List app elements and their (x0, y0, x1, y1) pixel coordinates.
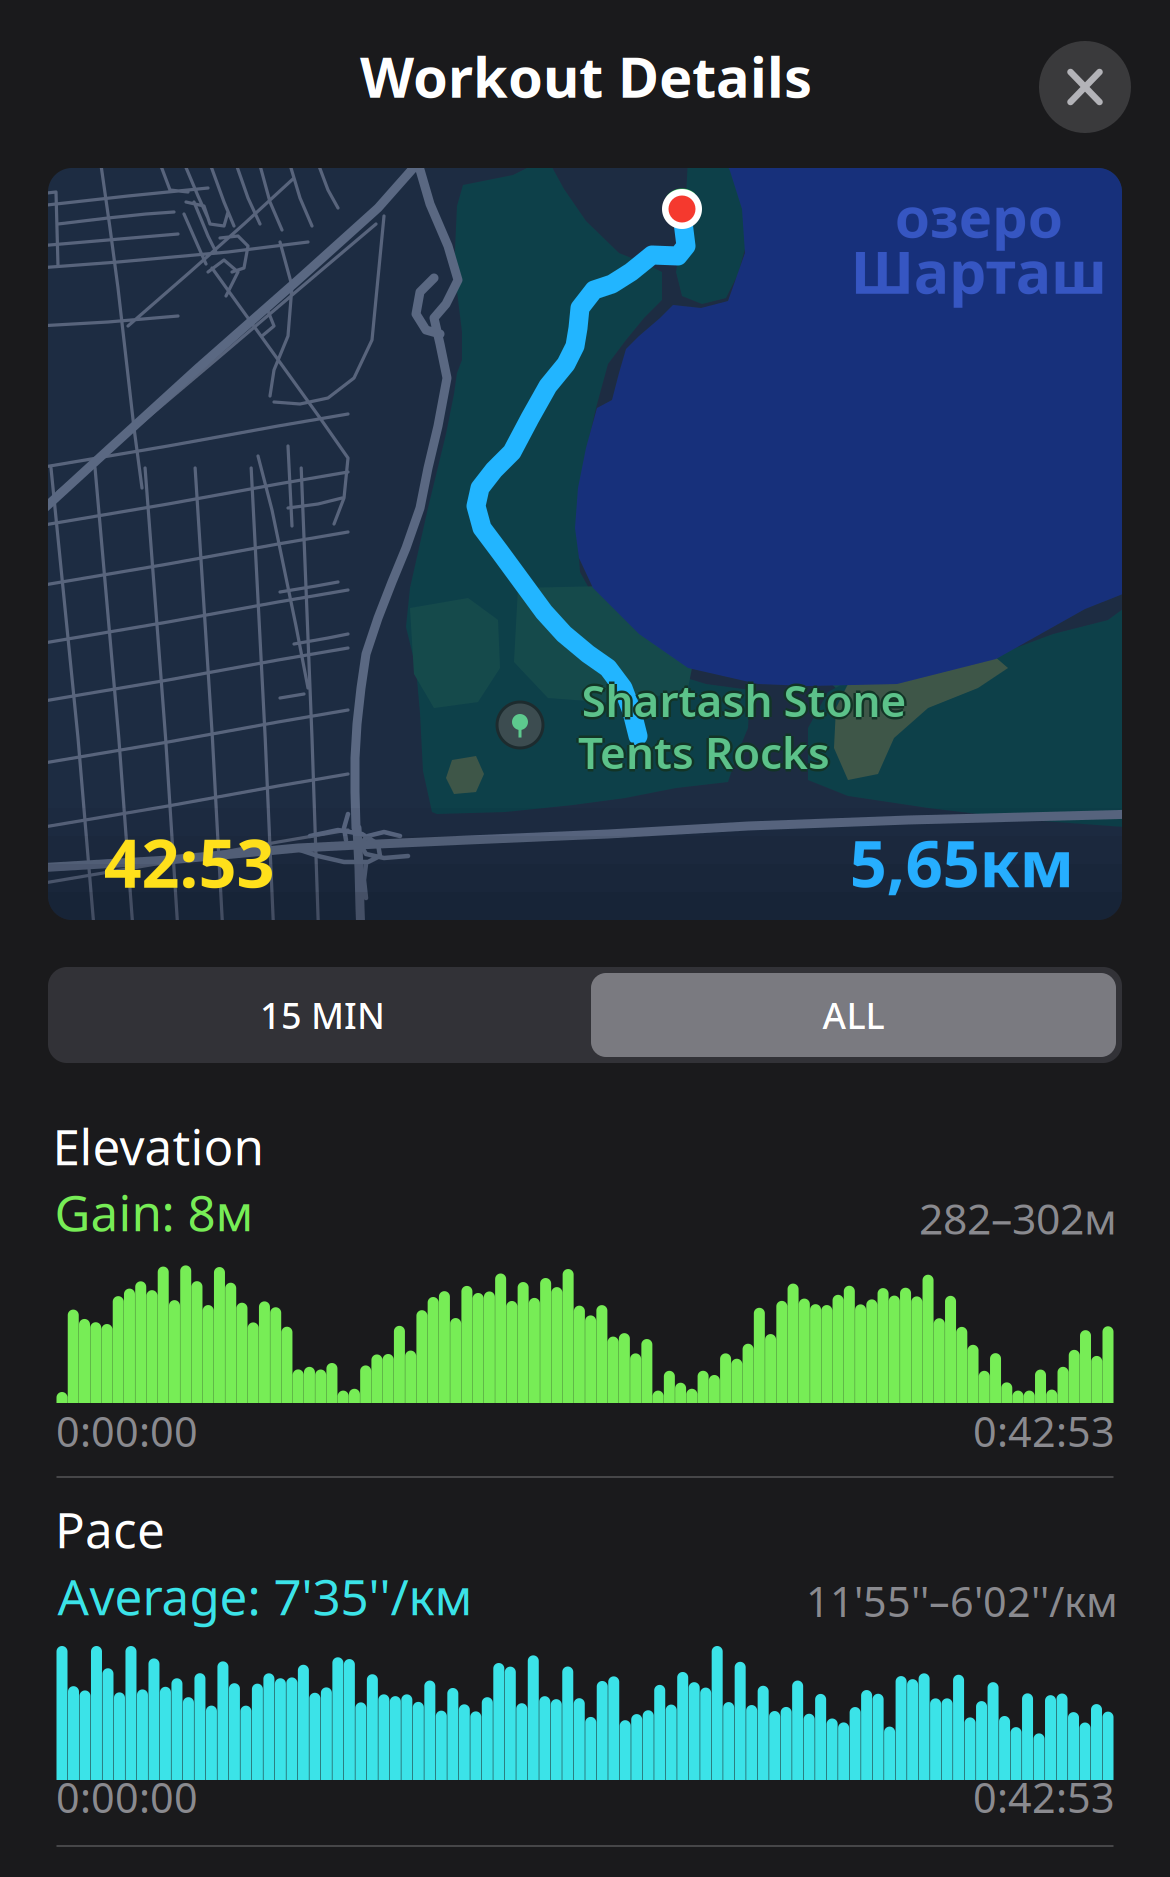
staticText: Tents Rocks (578, 720, 830, 779)
staticText: Pace (55, 1496, 165, 1562)
button[interactable]: Close (1025, 27, 1145, 147)
staticText: Tents Rocks (578, 723, 830, 781)
staticText: ALL (822, 991, 884, 1039)
staticText: Tents Rocks (578, 725, 830, 784)
staticText: Shartash Stone (581, 668, 906, 727)
staticText: Shartash Stone (581, 671, 906, 729)
staticText: Tents Rocks (580, 723, 832, 781)
staticText: 5,65км (849, 819, 1074, 905)
staticText: Шарташ (851, 232, 1107, 310)
staticText: озеро (895, 179, 1063, 253)
staticText: 282–302м (919, 1190, 1117, 1246)
staticText: 0:00:00 (56, 1770, 198, 1824)
staticText: Average: 7'35''/км (57, 1563, 472, 1629)
staticText: 0:42:53 (973, 1404, 1115, 1458)
staticText: 15 MIN (260, 991, 385, 1039)
staticText: Gain: 8м (54, 1179, 253, 1245)
staticText: 0:42:53 (973, 1770, 1115, 1824)
staticText: 0:00:00 (56, 1404, 198, 1458)
staticText: 11'55''–6'02''/км (806, 1574, 1118, 1628)
button[interactable]: ALL (591, 973, 1116, 1057)
button[interactable]: 15 MIN (54, 973, 591, 1057)
staticText: Tents Rocks (575, 723, 827, 781)
staticText: Shartash Stone (579, 671, 904, 729)
staticText: Elevation (52, 1113, 263, 1179)
staticText: 42:53 (103, 818, 274, 906)
staticText: Shartash Stone (581, 673, 906, 732)
staticText: Shartash Stone (584, 671, 909, 729)
staticText: Workout Details (360, 39, 812, 113)
